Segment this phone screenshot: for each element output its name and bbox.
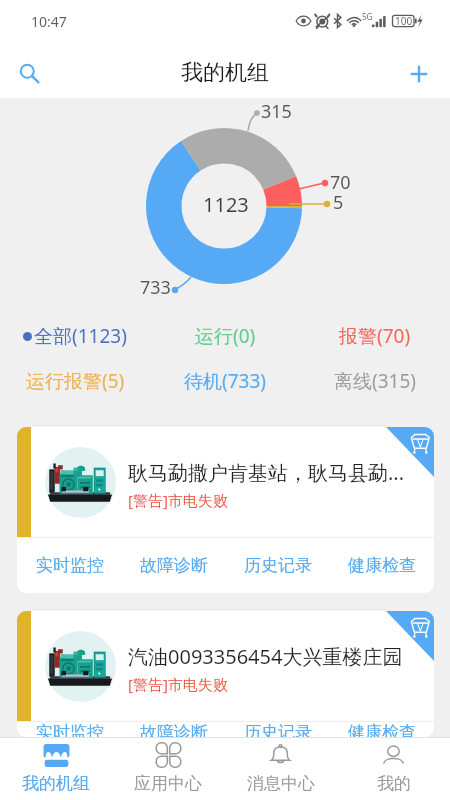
button[interactable]: 全部(1123) xyxy=(0,313,150,358)
button[interactable]: 历史记录 xyxy=(226,722,330,737)
button[interactable]: 耿马勐撒户肯基站，耿马县勐... xyxy=(17,427,434,593)
button[interactable]: 实时监控 xyxy=(17,722,122,737)
staticText: 消息中心 xyxy=(247,773,315,794)
button[interactable]: 离线(315) xyxy=(300,358,450,403)
button[interactable]: 运行(0) xyxy=(150,313,300,358)
staticText: 全部(1123) xyxy=(34,323,127,349)
button[interactable]: 报警(70) xyxy=(300,313,450,358)
staticText: 733 xyxy=(140,275,171,300)
button[interactable]: 我的机组 xyxy=(0,737,112,800)
staticText: [警告]市电失败 xyxy=(128,674,228,694)
button[interactable]: 汽油0093356454大兴重楼庄园 xyxy=(17,611,434,737)
staticText: 运行报警(5) xyxy=(26,368,125,394)
staticText: 历史记录 xyxy=(244,555,312,576)
staticText: 耿马勐撒户肯基站，耿马县勐... xyxy=(128,459,405,486)
staticText: 离线(315) xyxy=(334,368,417,394)
staticText: 待机(733) xyxy=(184,368,267,394)
staticText: 实时监控 xyxy=(36,555,104,576)
button[interactable]: 故障诊断 xyxy=(122,538,226,593)
staticText: 历史记录 xyxy=(244,722,312,737)
staticText: 315 xyxy=(261,99,292,124)
staticText: 我的 xyxy=(377,773,411,794)
staticText: 报警(70) xyxy=(339,323,411,349)
button[interactable]: Search xyxy=(11,55,47,91)
staticText: 汽油0093356454大兴重楼庄园 xyxy=(128,643,403,670)
staticText: 我的机组 xyxy=(22,773,90,794)
button[interactable]: 应用中心 xyxy=(112,737,224,800)
staticText: 70 xyxy=(330,170,351,195)
staticText: 健康检查 xyxy=(348,722,416,737)
staticText: 10:47 xyxy=(31,12,67,31)
button[interactable]: 历史记录 xyxy=(226,538,330,593)
button[interactable]: 实时监控 xyxy=(17,538,122,593)
staticText: 100 xyxy=(395,14,413,28)
button[interactable]: 健康检查 xyxy=(330,538,434,593)
staticText: 1123 xyxy=(203,191,249,218)
staticText: 健康检查 xyxy=(348,555,416,576)
staticText: 故障诊断 xyxy=(140,555,208,576)
staticText: 实时监控 xyxy=(36,722,104,737)
button[interactable]: 健康检查 xyxy=(330,722,434,737)
staticText: [警告]市电失败 xyxy=(128,490,228,510)
button[interactable]: 运行报警(5) xyxy=(0,358,150,403)
button[interactable]: 故障诊断 xyxy=(122,722,226,737)
staticText: 5G xyxy=(362,11,373,22)
button[interactable]: 消息中心 xyxy=(224,737,337,800)
staticText: 故障诊断 xyxy=(140,722,208,737)
staticText: 我的机组 xyxy=(181,59,269,87)
staticText: 5 xyxy=(333,190,344,215)
button[interactable]: 我的 xyxy=(337,737,450,800)
button[interactable]: 待机(733) xyxy=(150,358,300,403)
staticText: 运行(0) xyxy=(195,323,256,349)
button[interactable]: Add xyxy=(401,56,437,92)
staticText: 应用中心 xyxy=(134,773,202,794)
